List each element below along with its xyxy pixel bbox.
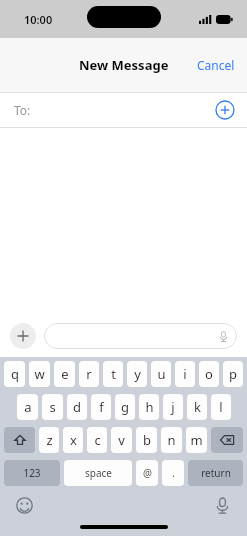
staticText: r xyxy=(86,365,92,383)
button[interactable]: return xyxy=(188,460,243,486)
staticText: h xyxy=(145,398,154,416)
button[interactable]: Emoji keyboard xyxy=(16,497,33,514)
button[interactable]: r xyxy=(79,361,99,387)
staticText: k xyxy=(194,398,201,416)
staticText: z xyxy=(46,431,53,449)
other: Dictate message xyxy=(218,331,229,342)
button[interactable]: Backspace xyxy=(211,427,243,453)
button[interactable]: n xyxy=(161,427,182,453)
staticText: Cancel xyxy=(197,57,235,73)
button[interactable]: Cancel xyxy=(185,47,247,83)
staticText: s xyxy=(49,398,56,416)
button[interactable]: m xyxy=(186,427,207,453)
button[interactable]: e xyxy=(54,361,75,387)
staticText: f xyxy=(99,398,104,416)
button[interactable]: c xyxy=(87,427,107,453)
staticText: x xyxy=(70,431,77,449)
button[interactable]: space xyxy=(64,460,132,486)
staticText: p xyxy=(229,365,237,383)
button[interactable]: To: xyxy=(0,93,247,127)
button[interactable]: k xyxy=(187,394,207,420)
staticText: t xyxy=(111,365,116,383)
staticText: a xyxy=(24,398,32,416)
button[interactable]: d xyxy=(67,394,87,420)
button[interactable]: p xyxy=(223,361,243,387)
button[interactable]: s xyxy=(42,394,63,420)
button[interactable]: . xyxy=(162,460,184,486)
staticText: . xyxy=(172,466,175,480)
staticText: c xyxy=(94,431,101,449)
button[interactable]: Add attachment xyxy=(10,323,36,349)
button[interactable]: y xyxy=(127,361,147,387)
staticText: v xyxy=(118,431,125,449)
staticText: To: xyxy=(14,102,31,118)
button[interactable]: g xyxy=(115,394,135,420)
button[interactable]: q xyxy=(4,361,25,387)
button[interactable]: Dictate message xyxy=(44,323,237,349)
staticText: l xyxy=(219,398,223,416)
button[interactable]: z xyxy=(39,427,59,453)
button[interactable]: 123 xyxy=(4,460,60,486)
button[interactable]: @ xyxy=(136,460,158,486)
button[interactable]: w xyxy=(29,361,50,387)
staticText: d xyxy=(73,398,81,416)
staticText: n xyxy=(167,431,176,449)
staticText: w xyxy=(34,365,45,383)
staticText: y xyxy=(134,365,141,383)
staticText: u xyxy=(157,365,166,383)
button[interactable]: Voice input xyxy=(214,497,231,514)
button[interactable]: b xyxy=(136,427,157,453)
staticText: m xyxy=(190,431,203,449)
button[interactable]: i xyxy=(175,361,195,387)
staticText: g xyxy=(121,398,129,416)
staticText: i xyxy=(183,365,187,383)
staticText: b xyxy=(143,431,151,449)
staticText: space xyxy=(85,466,112,480)
staticText: 123 xyxy=(23,466,41,480)
staticText: o xyxy=(205,365,213,383)
staticText: return xyxy=(201,466,231,480)
staticText: j xyxy=(171,398,175,416)
staticText: 10:00 xyxy=(24,12,53,27)
button[interactable]: f xyxy=(91,394,111,420)
staticText: @ xyxy=(143,466,152,480)
button[interactable]: h xyxy=(139,394,159,420)
button[interactable]: o xyxy=(199,361,219,387)
staticText: q xyxy=(11,365,19,383)
staticText: e xyxy=(61,365,69,383)
staticText: New Message xyxy=(79,56,169,74)
button[interactable]: Shift xyxy=(4,427,35,453)
button[interactable]: a xyxy=(17,394,38,420)
button[interactable]: x xyxy=(63,427,83,453)
button[interactable]: v xyxy=(111,427,132,453)
button[interactable]: j xyxy=(163,394,183,420)
button[interactable]: Add recipient xyxy=(215,100,235,120)
button[interactable]: l xyxy=(211,394,231,420)
button[interactable]: t xyxy=(103,361,123,387)
button[interactable]: u xyxy=(151,361,171,387)
